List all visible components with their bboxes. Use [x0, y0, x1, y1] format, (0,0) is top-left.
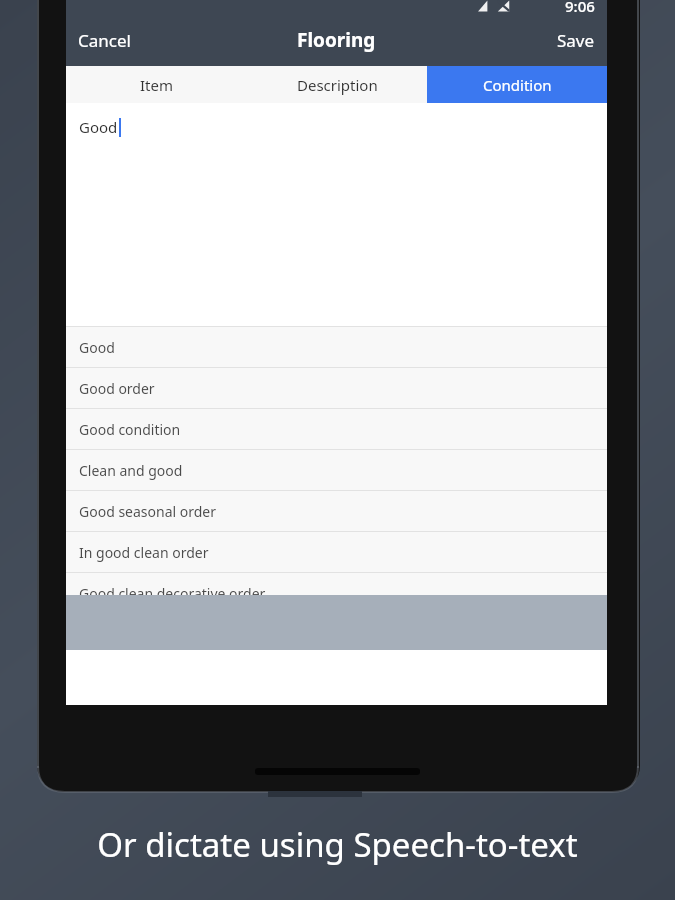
- button[interactable]: Condition: [427, 66, 607, 103]
- staticText: Good order: [79, 379, 155, 398]
- button[interactable]: Good clean decorative order: [66, 573, 607, 613]
- button[interactable]: Item: [66, 66, 247, 103]
- staticText: Clean and good: [79, 461, 183, 480]
- staticText: Condition: [483, 75, 552, 95]
- button[interactable]: Good: [66, 103, 607, 326]
- button[interactable]: Description: [247, 66, 427, 103]
- staticText: Description: [297, 75, 378, 95]
- staticText: Item: [140, 75, 173, 95]
- staticText: Good seasonal order: [79, 502, 217, 521]
- staticText: Save: [557, 29, 595, 52]
- button[interactable]: Save: [545, 21, 607, 60]
- button[interactable]: Cancel: [66, 21, 143, 60]
- staticText: In good clean order: [79, 543, 209, 562]
- staticText: 9:06: [565, 0, 595, 16]
- button[interactable]: Clean and good: [66, 450, 607, 490]
- staticText: Good clean decorative order: [79, 584, 266, 603]
- staticText: Good condition: [79, 420, 181, 439]
- button[interactable]: Good seasonal order: [66, 491, 607, 531]
- staticText: Good: [79, 117, 118, 137]
- button[interactable]: Good order: [66, 368, 607, 408]
- button[interactable]: In good clean order: [66, 532, 607, 572]
- staticText: Good: [79, 338, 115, 357]
- staticText: Or dictate using Speech-to-text: [0, 822, 675, 867]
- staticText: Cancel: [78, 29, 131, 52]
- staticText: Flooring: [297, 27, 376, 53]
- button[interactable]: Good: [66, 327, 607, 367]
- button[interactable]: Good condition: [66, 409, 607, 449]
